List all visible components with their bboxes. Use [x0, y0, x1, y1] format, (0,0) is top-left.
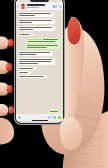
button[interactable]: Video call	[53, 5, 57, 8]
button[interactable]	[27, 38, 61, 43]
button[interactable]: Voice call	[59, 5, 62, 8]
button[interactable]	[18, 33, 33, 36]
button[interactable]	[18, 19, 55, 24]
button[interactable]	[18, 58, 55, 65]
button[interactable]	[18, 67, 36, 70]
button[interactable]	[18, 71, 31, 74]
button[interactable]: Send	[58, 116, 61, 119]
button[interactable]	[18, 51, 53, 56]
button[interactable]	[18, 12, 54, 17]
button[interactable]	[18, 26, 55, 31]
other: Back	[17, 5, 19, 8]
button[interactable]	[26, 44, 61, 49]
button[interactable]: Back	[17, 2, 62, 10]
button[interactable]: Camera	[53, 116, 56, 119]
button[interactable]: Attach	[18, 116, 21, 119]
button[interactable]	[49, 110, 61, 113]
button[interactable]	[18, 75, 47, 78]
button[interactable]: Sticker	[48, 116, 51, 119]
